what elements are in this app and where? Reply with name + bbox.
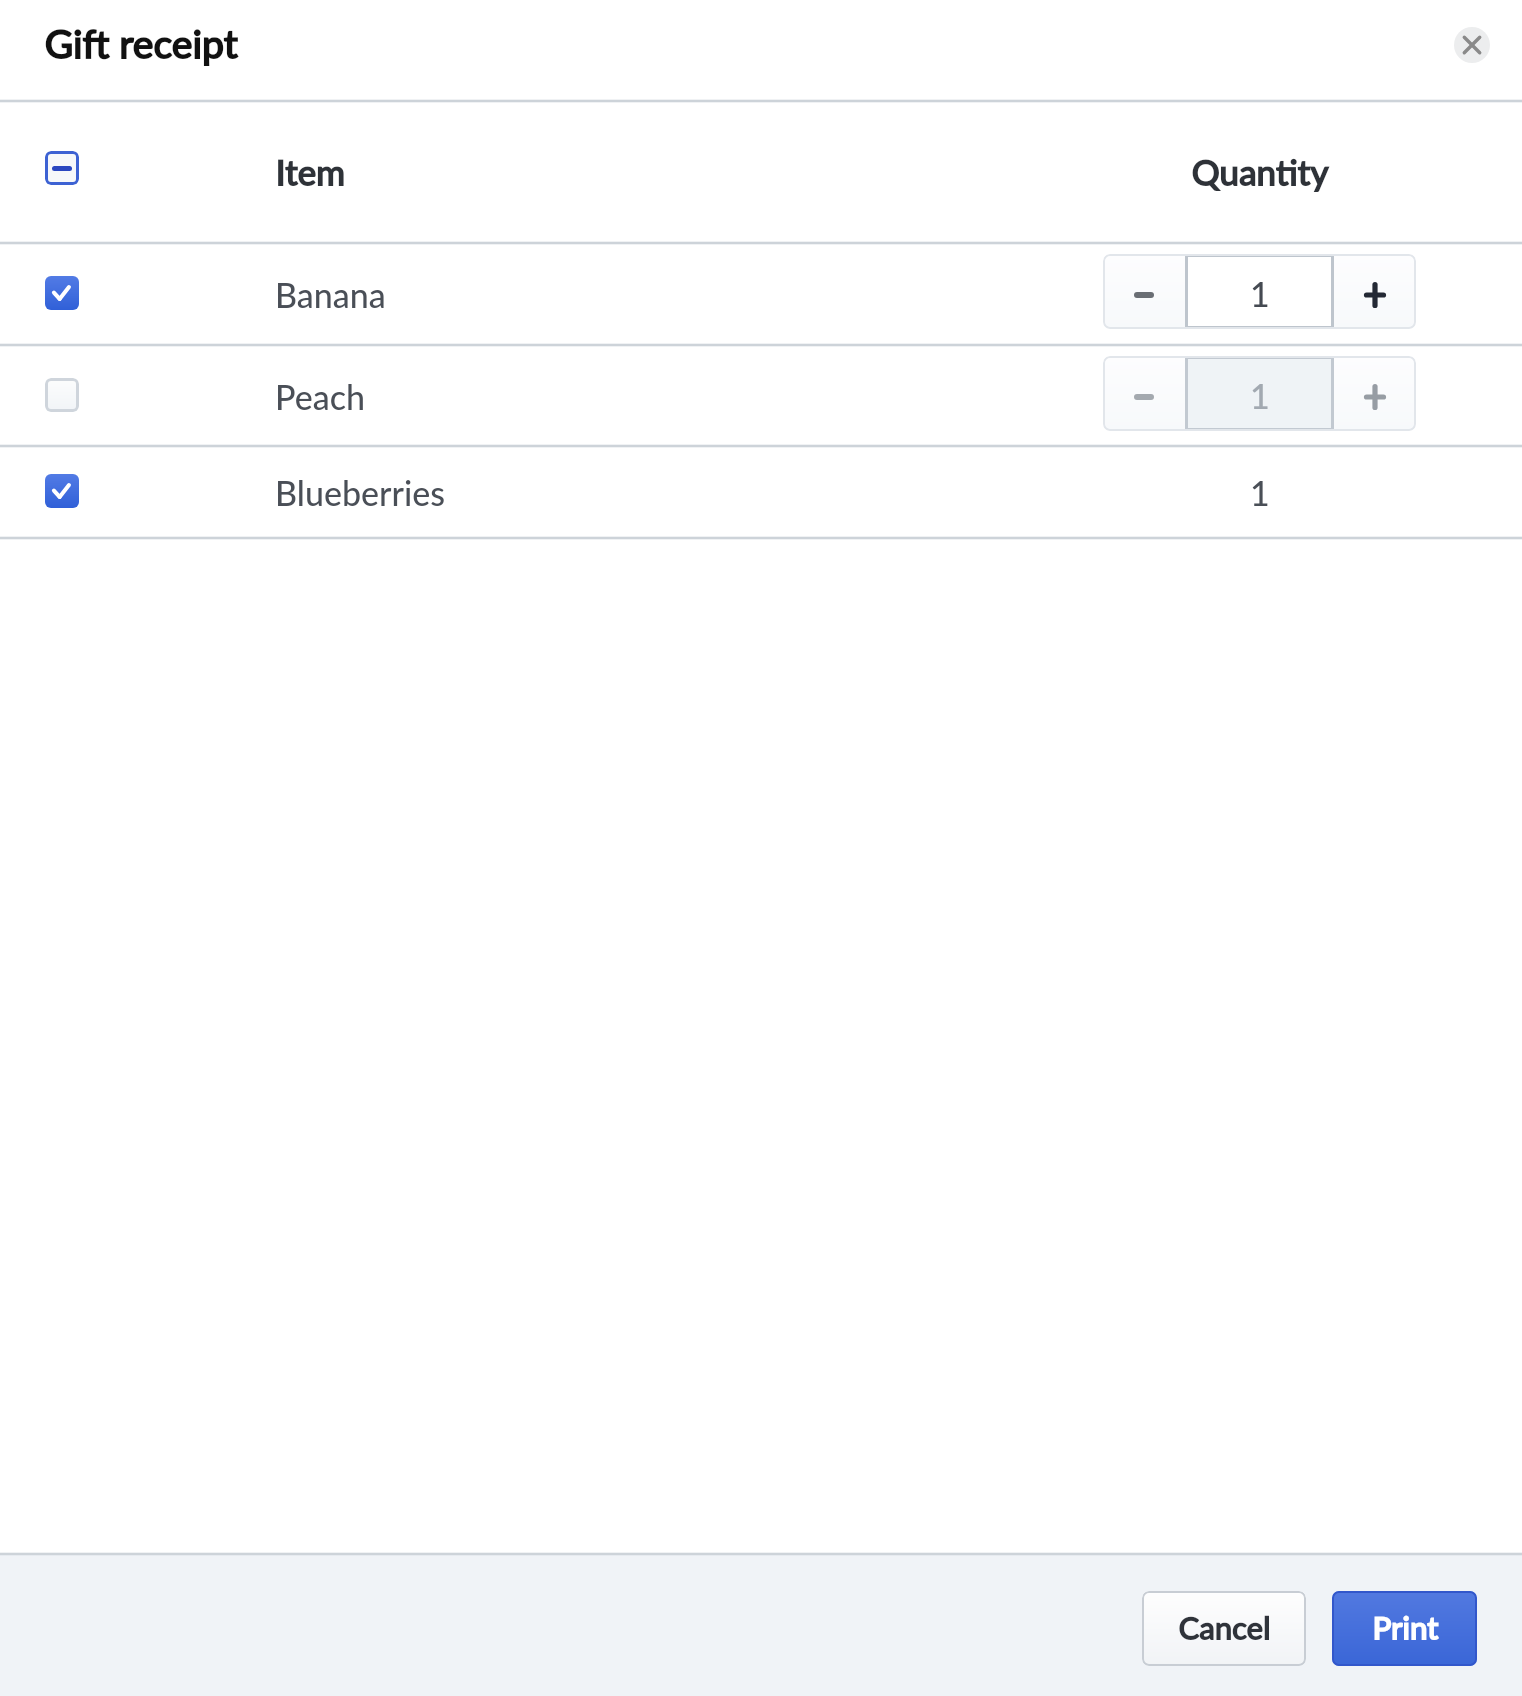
- button[interactable]: Select Banana: [45, 276, 79, 310]
- button[interactable]: Decrease quantity: [1103, 356, 1185, 431]
- staticText: Cancel: [1178, 1609, 1270, 1646]
- button[interactable]: Increase quantity: [1334, 254, 1416, 329]
- staticText: 1: [1250, 472, 1270, 513]
- staticText: Blueberries: [275, 472, 445, 513]
- button[interactable]: Decrease quantity: [1103, 254, 1185, 329]
- staticText: Banana: [275, 274, 386, 315]
- staticText: Print: [1372, 1609, 1438, 1646]
- button[interactable]: Print: [1332, 1591, 1477, 1666]
- button[interactable]: Select Blueberries: [45, 474, 79, 508]
- staticText: Quantity: [1191, 151, 1328, 193]
- button[interactable]: Select Peach: [45, 378, 79, 412]
- staticText: 1: [1250, 375, 1270, 416]
- button[interactable]: Close: [1454, 27, 1490, 63]
- staticText: Peach: [275, 376, 365, 417]
- button[interactable]: Select all items: [45, 151, 79, 185]
- staticText: 1: [1250, 273, 1270, 314]
- button[interactable]: Cancel: [1142, 1591, 1306, 1666]
- button[interactable]: Increase quantity: [1334, 356, 1416, 431]
- staticText: Gift receipt: [44, 21, 238, 68]
- staticText: Item: [275, 151, 345, 193]
